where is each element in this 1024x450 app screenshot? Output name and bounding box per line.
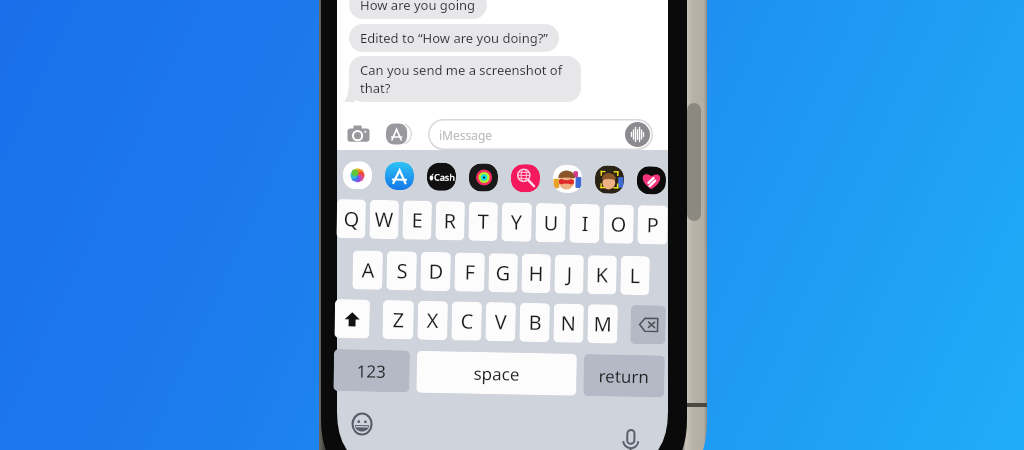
button[interactable]: B	[519, 303, 550, 342]
staticText: I	[581, 210, 589, 237]
staticText: Z	[392, 306, 405, 333]
staticText: Edited to “How are you doing?”	[360, 29, 548, 47]
staticText: space	[473, 362, 520, 386]
staticText: B	[528, 309, 542, 336]
button[interactable]: Memoji	[553, 165, 582, 193]
staticText: T	[477, 208, 490, 235]
button[interactable]: S	[386, 251, 417, 291]
button[interactable]: Edited to “How are you doing?”	[349, 24, 559, 52]
button[interactable]: App Store	[385, 162, 414, 190]
button[interactable]: iMessage	[428, 119, 653, 150]
staticText: N	[560, 309, 577, 337]
staticText: return	[598, 364, 650, 388]
button[interactable]: Apple Cash	[427, 162, 456, 191]
button[interactable]: return	[583, 354, 665, 398]
button[interactable]: Health	[637, 166, 666, 195]
button[interactable]: Can you send me a screenshot of that?	[349, 56, 581, 102]
button[interactable]: Apps	[386, 122, 410, 146]
staticText: J	[566, 261, 573, 288]
staticText: V	[494, 308, 507, 335]
staticText: C	[460, 307, 474, 335]
staticText: D	[428, 258, 444, 285]
button[interactable]: Q	[336, 199, 366, 239]
staticText: S	[396, 257, 408, 284]
staticText: F	[464, 259, 476, 286]
staticText: X	[426, 307, 439, 334]
button[interactable]: V	[485, 302, 516, 342]
button[interactable]: E	[402, 200, 432, 240]
button[interactable]: W	[369, 200, 399, 239]
button[interactable]: Audio message	[625, 122, 650, 147]
button[interactable]: J	[554, 254, 584, 294]
button[interactable]: Memoji	[595, 165, 624, 194]
button[interactable]: O	[603, 204, 634, 244]
staticText: G	[495, 259, 511, 286]
button[interactable]: Camera	[347, 123, 370, 146]
staticText: A	[361, 256, 375, 284]
button[interactable]: H	[521, 254, 551, 293]
button[interactable]: How are you going	[349, 0, 487, 19]
staticText: Can you send me a screenshot of that?	[360, 61, 570, 97]
button[interactable]: D	[420, 252, 451, 291]
staticText: P	[646, 211, 660, 238]
button[interactable]: L	[620, 256, 650, 295]
button[interactable]: T	[468, 202, 498, 241]
button[interactable]: Dictation	[622, 429, 639, 450]
button[interactable]: 123	[333, 349, 410, 392]
button[interactable]: A	[352, 250, 383, 290]
button[interactable]: Fitness	[469, 163, 498, 192]
button[interactable]: Shift	[334, 299, 370, 339]
button[interactable]: U	[535, 203, 566, 243]
staticText: M	[593, 310, 613, 338]
staticText: L	[629, 262, 641, 289]
button[interactable]: R	[435, 201, 465, 241]
staticText: O	[610, 210, 627, 238]
staticText: H	[528, 260, 544, 287]
button[interactable]: C	[451, 301, 482, 341]
button[interactable]: Photos	[343, 161, 372, 189]
button[interactable]: N	[553, 303, 584, 343]
staticText: iMessage	[439, 127, 493, 143]
staticText: How are you going	[360, 0, 476, 14]
button[interactable]: Search	[511, 164, 540, 192]
button[interactable]: X	[417, 301, 448, 340]
staticText: Q	[343, 205, 360, 232]
button[interactable]: Y	[501, 202, 532, 242]
button[interactable]: space	[416, 351, 577, 396]
button[interactable]: I	[569, 204, 600, 243]
button[interactable]: Emoji	[351, 412, 373, 436]
button[interactable]: F	[454, 252, 485, 292]
staticText: K	[595, 261, 609, 288]
staticText: Cash	[434, 171, 455, 183]
button[interactable]: Backspace	[630, 305, 666, 345]
button[interactable]: M	[587, 304, 618, 344]
staticText: E	[411, 206, 424, 234]
button[interactable]: G	[488, 253, 518, 293]
staticText: Y	[510, 208, 523, 236]
staticText: R	[443, 207, 457, 234]
button[interactable]: Z	[382, 300, 414, 339]
staticText: W	[374, 206, 394, 233]
button[interactable]: P	[637, 205, 668, 245]
button[interactable]: K	[587, 255, 617, 295]
staticText: 123	[356, 359, 387, 383]
staticText: U	[543, 209, 559, 236]
